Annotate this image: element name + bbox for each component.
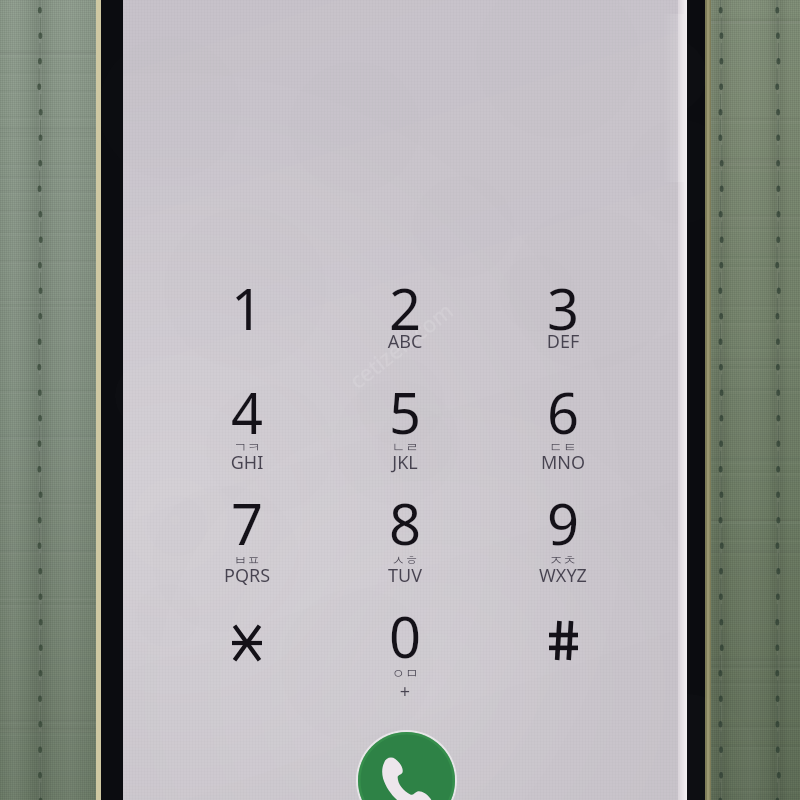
staticText: GHI — [172, 450, 322, 474]
staticText: DEF — [488, 329, 638, 353]
button[interactable]: 1 — [172, 270, 322, 378]
staticText: 9 — [488, 485, 638, 561]
staticText: ㄷㅌ — [488, 439, 638, 459]
staticText: 3 — [488, 270, 638, 346]
button[interactable]: 8 — [330, 485, 480, 593]
staticText: ㄴㄹ — [330, 439, 480, 459]
button[interactable]: 5 — [330, 374, 480, 482]
button[interactable]: Call — [354, 728, 459, 800]
staticText: ㅂㅍ — [172, 552, 322, 572]
staticText: MNO — [488, 450, 638, 474]
staticText: 0 — [330, 598, 480, 674]
button[interactable] — [488, 598, 638, 706]
staticText: 6 — [488, 374, 638, 450]
staticText: ㄱㅋ — [172, 439, 322, 459]
button[interactable]: 9 — [488, 485, 638, 593]
button[interactable]: 3 — [488, 270, 638, 378]
button[interactable]: 7 — [172, 485, 322, 593]
button[interactable] — [172, 598, 322, 706]
staticText: ㅈㅊ — [488, 552, 638, 572]
staticText: TUV — [330, 563, 480, 587]
button[interactable]: 2 — [330, 270, 480, 378]
staticText: WXYZ — [488, 563, 638, 587]
staticText: 1 — [172, 270, 322, 346]
staticText: ABC — [330, 329, 480, 353]
staticText: 8 — [330, 485, 480, 561]
staticText: ㅇㅁ — [330, 665, 480, 685]
staticText: 4 — [172, 374, 322, 450]
staticText: 7 — [172, 485, 322, 561]
staticText: JKL — [330, 450, 480, 474]
staticText: cetizen.com — [343, 295, 459, 395]
staticText: 5 — [330, 374, 480, 450]
staticText: 2 — [330, 270, 480, 346]
staticText: + — [330, 679, 480, 703]
button[interactable]: 0 — [330, 598, 480, 706]
staticText: PQRS — [172, 563, 322, 587]
button[interactable]: 6 — [488, 374, 638, 482]
staticText: ㅅㅎ — [330, 552, 480, 572]
button[interactable]: 4 — [172, 374, 322, 482]
